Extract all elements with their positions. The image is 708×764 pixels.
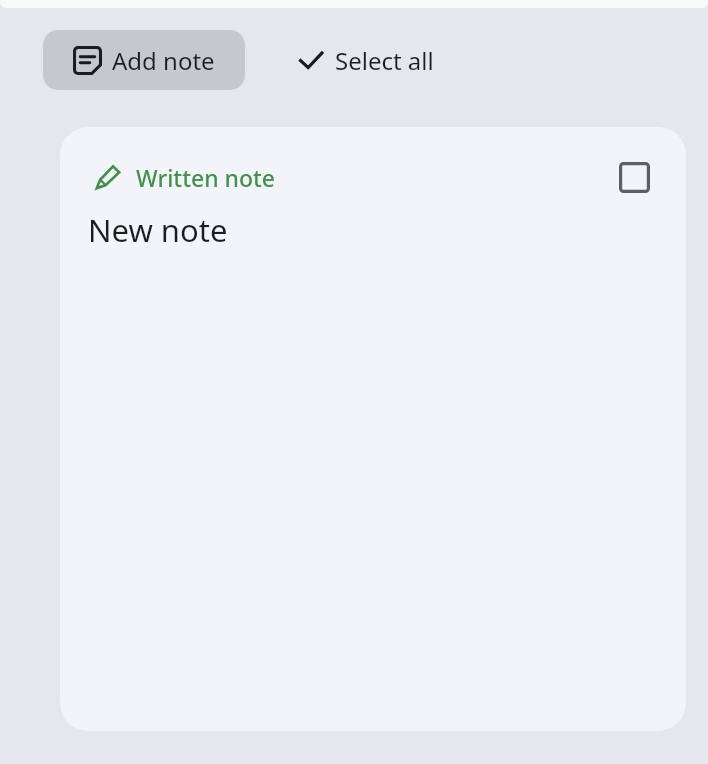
staticText: New note (88, 209, 228, 251)
button[interactable]: Add note (43, 30, 245, 90)
button[interactable]: Select all (293, 30, 438, 90)
staticText: Written note (136, 162, 276, 193)
staticText: Add note (112, 44, 215, 77)
staticText: Select all (335, 44, 434, 77)
button[interactable]: Written note (60, 127, 686, 731)
button[interactable]: Select note (612, 155, 656, 199)
